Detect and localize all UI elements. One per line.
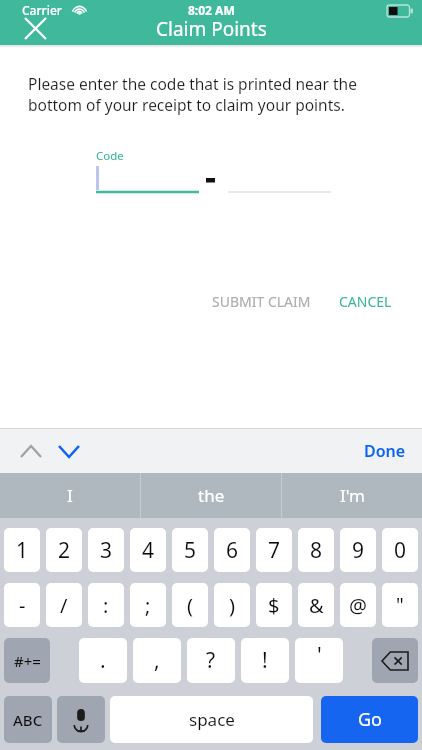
button[interactable]: 4	[130, 528, 166, 572]
button[interactable]: CANCEL	[325, 282, 406, 321]
staticText: Done	[364, 440, 406, 462]
staticText: 0	[394, 536, 407, 565]
button[interactable]: I'm	[282, 473, 422, 518]
button[interactable]: !	[241, 638, 289, 683]
button[interactable]	[228, 165, 331, 194]
button[interactable]: the	[141, 473, 281, 518]
staticText: 3	[100, 536, 113, 565]
staticText: ;	[145, 592, 151, 619]
staticText: Carrier	[22, 2, 62, 18]
button[interactable]: ?	[187, 638, 235, 683]
button[interactable]	[96, 165, 199, 194]
staticText: -	[19, 592, 26, 619]
button[interactable]: @	[340, 583, 376, 627]
button[interactable]: )	[214, 583, 250, 627]
staticText: ,	[154, 646, 160, 675]
staticText: /	[60, 592, 68, 619]
button[interactable]: 6	[214, 528, 250, 572]
staticText: @	[349, 592, 367, 619]
button[interactable]: 5	[172, 528, 208, 572]
button[interactable]: Previous field	[12, 432, 50, 470]
button[interactable]: Close	[16, 9, 54, 47]
button[interactable]: SUBMIT CLAIM	[198, 282, 325, 321]
staticText: 7	[268, 536, 281, 565]
staticText: 5	[184, 536, 197, 565]
staticText: :	[103, 592, 109, 619]
staticText: Code	[96, 148, 124, 164]
staticText: I	[67, 484, 73, 507]
staticText: !	[262, 646, 268, 675]
staticText: space	[189, 708, 235, 731]
button[interactable]: 8	[298, 528, 334, 572]
button[interactable]: Done	[348, 430, 422, 472]
button[interactable]: #+=	[4, 638, 50, 683]
staticText: 4	[142, 536, 155, 565]
staticText: Claim Points	[156, 16, 267, 42]
button[interactable]: 1	[4, 528, 40, 572]
button[interactable]: &	[298, 583, 334, 627]
button[interactable]: -	[4, 583, 40, 627]
button[interactable]: 7	[256, 528, 292, 572]
button[interactable]: '	[295, 638, 343, 683]
button[interactable]: ,	[133, 638, 181, 683]
staticText: 8:02 AM	[188, 2, 235, 18]
staticText: 1	[16, 536, 29, 565]
button[interactable]: $	[256, 583, 292, 627]
button[interactable]: Next field	[50, 432, 88, 470]
button[interactable]: "	[382, 583, 418, 627]
staticText: (	[187, 592, 193, 619]
staticText: 6	[226, 536, 239, 565]
staticText: the	[198, 484, 225, 507]
staticText: $	[268, 592, 280, 619]
button[interactable]: I	[0, 473, 140, 518]
button[interactable]: /	[46, 583, 82, 627]
button[interactable]: 9	[340, 528, 376, 572]
staticText: 2	[58, 536, 71, 565]
button[interactable]: 3	[88, 528, 124, 572]
staticText: 8	[310, 536, 323, 565]
button[interactable]: Backspace	[372, 638, 418, 683]
button[interactable]: 0	[382, 528, 418, 572]
button[interactable]: Dictate	[57, 696, 105, 743]
button[interactable]: ;	[130, 583, 166, 627]
button[interactable]: 2	[46, 528, 82, 572]
button[interactable]: ABC	[4, 696, 52, 743]
staticText: Please enter the code that is printed ne…	[28, 73, 398, 116]
button[interactable]: Go	[321, 696, 418, 743]
staticText: ?	[206, 646, 216, 675]
staticText: &	[309, 592, 324, 619]
staticText: ABC	[13, 710, 43, 730]
button[interactable]: (	[172, 583, 208, 627]
button[interactable]: space	[110, 696, 313, 743]
staticText: I'm	[340, 484, 365, 507]
staticText: "	[396, 592, 404, 618]
button[interactable]: :	[88, 583, 124, 627]
staticText: CANCEL	[339, 292, 392, 311]
staticText: Go	[358, 707, 382, 732]
staticText: SUBMIT CLAIM	[212, 292, 311, 311]
button[interactable]: .	[79, 638, 127, 683]
staticText: 9	[352, 536, 365, 565]
staticText: #+=	[14, 651, 41, 671]
staticText: .	[100, 646, 106, 675]
staticText: '	[317, 641, 322, 670]
staticText: )	[229, 592, 235, 619]
